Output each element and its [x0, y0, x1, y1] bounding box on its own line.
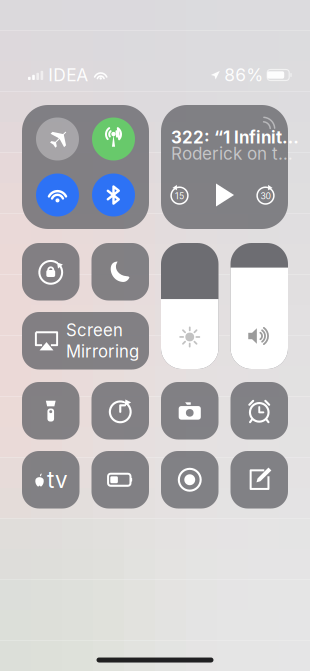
button[interactable]: Alarm — [230, 382, 288, 439]
button[interactable]: Low Power Mode — [91, 451, 149, 508]
staticText: Screen — [66, 320, 123, 340]
staticText: Mirroring — [66, 341, 139, 361]
button[interactable]: Timer — [91, 382, 149, 439]
button[interactable]: Bluetooth — [92, 173, 135, 216]
button[interactable]: AirPlay — [260, 112, 280, 132]
button[interactable]: Do Not Disturb — [91, 243, 149, 300]
button[interactable]: Flashlight — [22, 382, 79, 439]
staticText: Roderick on t… — [171, 143, 293, 164]
button[interactable]: Cellular Data — [92, 117, 135, 160]
button[interactable]: Screen Recording — [161, 451, 218, 508]
button[interactable]: Airplane Mode — [36, 117, 79, 160]
button[interactable]: Volume — [230, 243, 288, 369]
button[interactable]: Brightness — [161, 243, 218, 369]
button[interactable]: Rotation Lock — [22, 243, 79, 300]
button[interactable]: Notes — [230, 451, 288, 508]
staticText: IDEA — [48, 64, 88, 85]
button[interactable]: Skip back 15 seconds — [168, 184, 190, 206]
staticText: 86% — [224, 64, 263, 85]
button[interactable]: Camera — [161, 382, 218, 439]
staticText: 322: “1 Infinit… — [171, 127, 299, 148]
staticText: tv — [47, 466, 68, 493]
button[interactable]: Screen — [22, 312, 149, 369]
button[interactable]: Skip forward 30 seconds — [254, 184, 276, 206]
button[interactable]: Apple TV Remote — [22, 451, 79, 508]
button[interactable]: Play — [211, 182, 237, 208]
button[interactable]: Wi-Fi — [36, 173, 79, 216]
staticText: 30 — [260, 191, 270, 201]
staticText: 15 — [175, 191, 184, 201]
